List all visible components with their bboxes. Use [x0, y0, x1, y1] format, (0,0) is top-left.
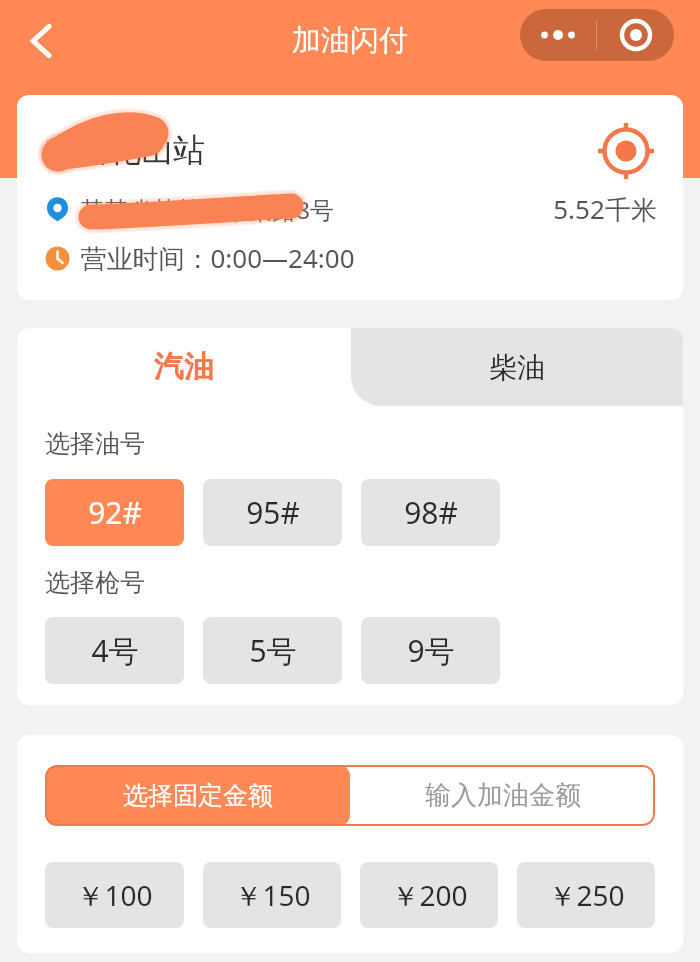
button[interactable]: Close [597, 9, 674, 61]
staticText: 汽油 [154, 348, 214, 386]
button[interactable]: Back [17, 17, 65, 65]
button[interactable]: 9号 [361, 617, 500, 684]
staticText: ￥200 [391, 876, 468, 914]
staticText: 95# [246, 492, 300, 533]
button[interactable]: ￥150 [203, 862, 341, 928]
staticText: 选择油号 [45, 428, 145, 459]
staticText: 某某省某某市某某路8号 [80, 193, 334, 226]
button[interactable]: ￥100 [45, 862, 184, 928]
button[interactable]: 92# [45, 479, 184, 546]
button[interactable]: Locate [596, 121, 656, 181]
button[interactable]: 95# [203, 479, 342, 546]
button[interactable]: 5号 [203, 617, 342, 684]
staticText: 输入加油金额 [425, 779, 581, 812]
button[interactable]: ￥200 [360, 862, 498, 928]
staticText: 加油闪付 [292, 22, 408, 59]
staticText: 中石化山站 [45, 130, 205, 170]
staticText: ￥100 [76, 876, 153, 914]
staticText: 9号 [407, 630, 455, 671]
staticText: 92# [88, 492, 142, 533]
staticText: 柴油 [489, 350, 545, 385]
button[interactable]: 汽油 [17, 328, 351, 406]
staticText: ￥150 [234, 876, 311, 914]
button[interactable]: 选择固定金额 [45, 765, 350, 826]
button[interactable]: 柴油 [351, 328, 683, 406]
staticText: 4号 [91, 630, 139, 671]
button[interactable]: 98# [361, 479, 500, 546]
button[interactable]: 中石化山站 [17, 95, 683, 173]
staticText: 5号 [249, 630, 297, 671]
button[interactable]: 4号 [45, 617, 184, 684]
staticText: 选择枪号 [45, 567, 145, 598]
staticText: 5.52千米 [553, 191, 657, 227]
button[interactable]: ￥250 [517, 862, 655, 928]
staticText: 98# [404, 492, 458, 533]
button[interactable]: More [520, 9, 596, 61]
button[interactable]: 输入加油金额 [350, 765, 655, 826]
staticText: 营业时间：0:00—24:00 [80, 240, 355, 276]
staticText: 选择固定金额 [123, 780, 273, 811]
staticText: ￥250 [548, 876, 625, 914]
